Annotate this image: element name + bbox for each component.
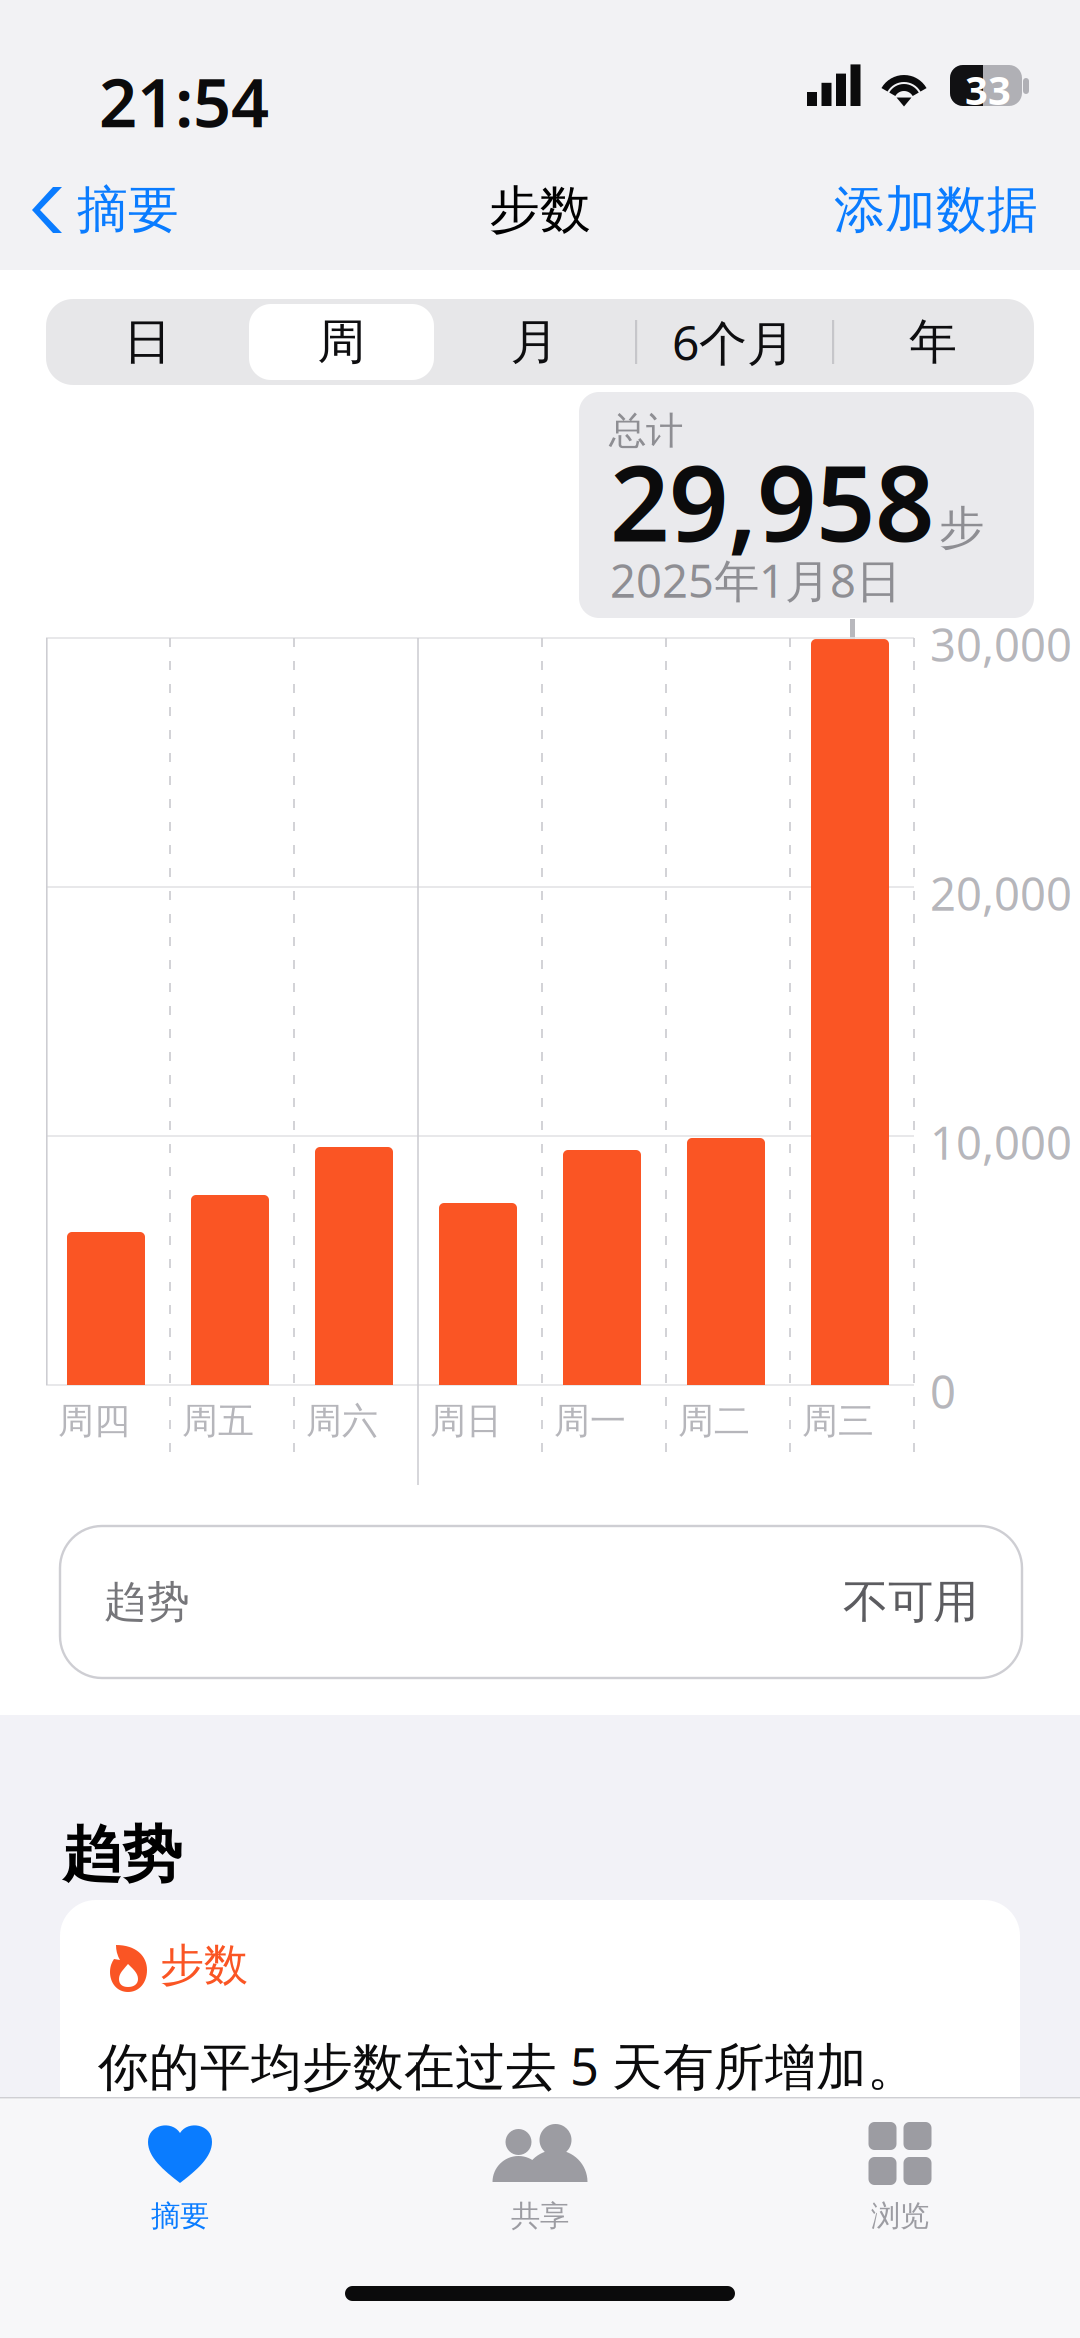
- staticText: 年: [909, 312, 957, 371]
- staticText: 33: [965, 63, 1011, 116]
- staticText: 周二: [678, 1399, 750, 1443]
- staticText: 29,958: [610, 432, 934, 570]
- staticText: 你的平均步数在过去 5 天有所增加。: [98, 2032, 918, 2099]
- button[interactable]: 周: [249, 299, 434, 385]
- staticText: 0: [930, 1361, 956, 1421]
- staticText: 步数: [160, 1938, 248, 1992]
- button[interactable]: 共享: [360, 2097, 720, 2267]
- staticText: 周: [317, 312, 365, 371]
- staticText: 6个月: [672, 310, 795, 374]
- staticText: 30,000: [930, 614, 1072, 674]
- staticText: 共享: [511, 2198, 569, 2234]
- staticText: 浏览: [871, 2198, 929, 2234]
- staticText: 趋势: [104, 1576, 190, 1628]
- button[interactable]: 添加数据: [792, 152, 1080, 268]
- staticText: 摘要: [151, 2198, 209, 2234]
- button[interactable]: 年: [832, 299, 1034, 385]
- button[interactable]: 摘要: [0, 2097, 360, 2267]
- staticText: 摘要: [77, 179, 179, 241]
- staticText: 日: [123, 312, 171, 371]
- button[interactable]: 摘要: [0, 152, 199, 268]
- staticText: 2025年1月8日: [610, 550, 901, 610]
- button[interactable]: 浏览: [720, 2097, 1080, 2267]
- staticText: 21:54: [99, 57, 269, 145]
- button[interactable]: 月: [434, 299, 635, 385]
- button[interactable]: 步数: [60, 1900, 1020, 2200]
- button[interactable]: 趋势: [60, 1526, 1022, 1678]
- staticText: 趋势: [62, 1818, 182, 1892]
- staticText: 周日: [430, 1399, 502, 1443]
- staticText: 周三: [802, 1399, 874, 1443]
- staticText: 周六: [306, 1399, 378, 1443]
- staticText: 10,000: [930, 1112, 1072, 1172]
- staticText: 周一: [554, 1399, 626, 1443]
- staticText: 总计: [609, 408, 683, 454]
- staticText: 不可用: [843, 1574, 978, 1630]
- staticText: 步: [939, 500, 984, 556]
- staticText: 周四: [58, 1399, 130, 1443]
- staticText: 月: [510, 312, 558, 371]
- button[interactable]: 日: [46, 299, 249, 385]
- staticText: 20,000: [930, 863, 1072, 923]
- staticText: 步数: [489, 179, 591, 241]
- staticText: 周五: [182, 1399, 254, 1443]
- button[interactable]: 6个月: [635, 299, 832, 385]
- staticText: 添加数据: [834, 179, 1038, 241]
